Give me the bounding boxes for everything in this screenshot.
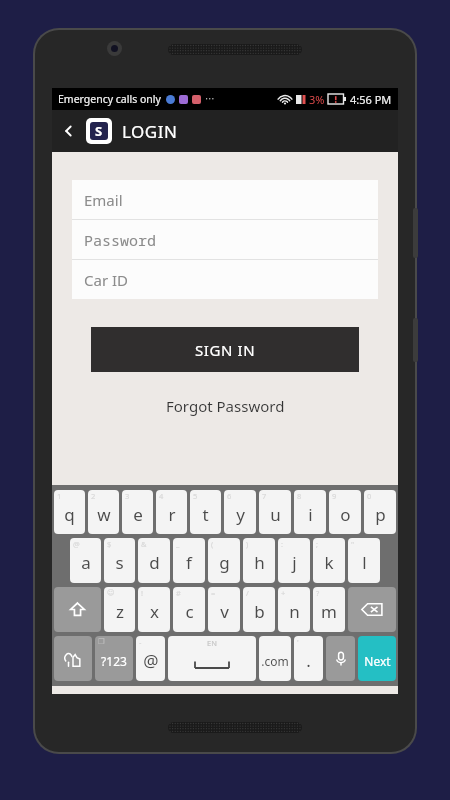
button[interactable]: ?123 [95,636,133,681]
button[interactable]: Forgot Password [52,396,398,416]
staticText: # [176,588,181,598]
staticText: ?123 [101,653,127,669]
button[interactable]: x [138,587,170,632]
staticText: v [220,600,229,623]
button[interactable]: s [104,538,135,583]
button[interactable]: o [329,490,361,534]
button[interactable]: Password [72,220,378,259]
staticText: 6 [227,491,232,501]
staticText: ( [211,539,214,549]
button[interactable]: b [243,587,275,632]
button[interactable]: f [173,538,205,583]
button[interactable]: Back [52,110,86,152]
staticText: j [292,551,297,574]
button[interactable]: m [313,587,345,632]
button[interactable]: y [224,490,256,534]
button[interactable]: n [278,587,310,632]
staticText: s [115,551,124,574]
staticText: 8 [297,491,302,501]
button[interactable]: Shift [54,587,101,632]
staticText: S [95,122,103,140]
staticText: EN [207,638,217,648]
staticText: Car ID [84,270,129,290]
staticText: ❐ [98,637,105,646]
staticText: SIGN IN [195,340,256,360]
staticText: $ [107,539,112,549]
staticText: i [308,503,313,526]
staticText: p [375,503,386,526]
button[interactable]: SIGN IN [91,327,359,372]
button[interactable]: Backspace [348,587,396,632]
staticText: 4 [159,491,164,501]
button[interactable]: r [156,490,187,534]
staticText: 3 [125,491,130,501]
staticText: n [289,600,300,623]
staticText: e [133,503,143,526]
staticText: k [324,551,334,574]
staticText: 0 [367,491,372,501]
staticText: Password [84,230,157,250]
button[interactable]: v [208,587,240,632]
staticText: l [362,551,367,574]
button[interactable]: t [190,490,221,534]
staticText: w [97,503,111,526]
button[interactable]: w [88,490,119,534]
staticText: @ [143,649,159,672]
button[interactable]: q [54,490,85,534]
staticText: @ [73,539,80,549]
button[interactable]: l [348,538,380,583]
button[interactable]: Next [358,636,396,681]
staticText: r [168,503,176,526]
staticText: h [254,551,265,574]
staticText: m [321,600,337,623]
staticText: = [211,588,216,598]
staticText: 4:56 PM [350,92,392,107]
button[interactable]: i [294,490,326,534]
button[interactable]: d [138,538,170,583]
button[interactable]: . [294,636,323,681]
button[interactable]: h [243,538,275,583]
staticText: o [340,503,351,526]
staticText: ) [246,539,249,549]
button[interactable]: @ [136,636,165,681]
button[interactable]: g [208,538,240,583]
button[interactable]: Space [168,636,256,681]
staticText: b [254,600,265,623]
button[interactable]: c [173,587,205,632]
staticText: d [149,551,160,574]
staticText: ⋯ [205,93,215,105]
button[interactable]: Car ID [72,260,378,299]
staticText: 3% [309,92,325,107]
staticText: ! [141,588,144,598]
staticText: Next [364,653,391,669]
button[interactable]: e [122,490,153,534]
button[interactable]: Voice input [326,636,355,681]
staticText: 9 [332,491,337,501]
button[interactable]: Email [72,180,378,219]
button[interactable]: j [278,538,310,583]
button[interactable]: z [104,587,135,632]
button[interactable]: u [259,490,291,534]
button[interactable]: .com [259,636,291,681]
staticText: x [150,600,159,623]
staticText: + [281,588,286,598]
staticText: _ [176,539,180,549]
staticText: / [246,588,249,598]
button[interactable]: a [70,538,101,583]
staticText: . [306,649,311,672]
button[interactable]: k [313,538,345,583]
button[interactable]: p [364,490,396,534]
staticText: Forgot Password [166,396,285,416]
staticText: y [236,503,245,526]
staticText: ? [316,588,320,598]
staticText: g [219,551,230,574]
staticText: 7 [262,491,267,501]
staticText: 2 [91,491,96,501]
staticText: & [141,539,147,549]
button[interactable]: Emoji [54,636,92,681]
staticText: Email [84,190,123,210]
staticText: a [81,551,91,574]
staticText: : [281,539,284,549]
staticText: f [186,551,192,574]
staticText: ☺ [107,588,115,597]
